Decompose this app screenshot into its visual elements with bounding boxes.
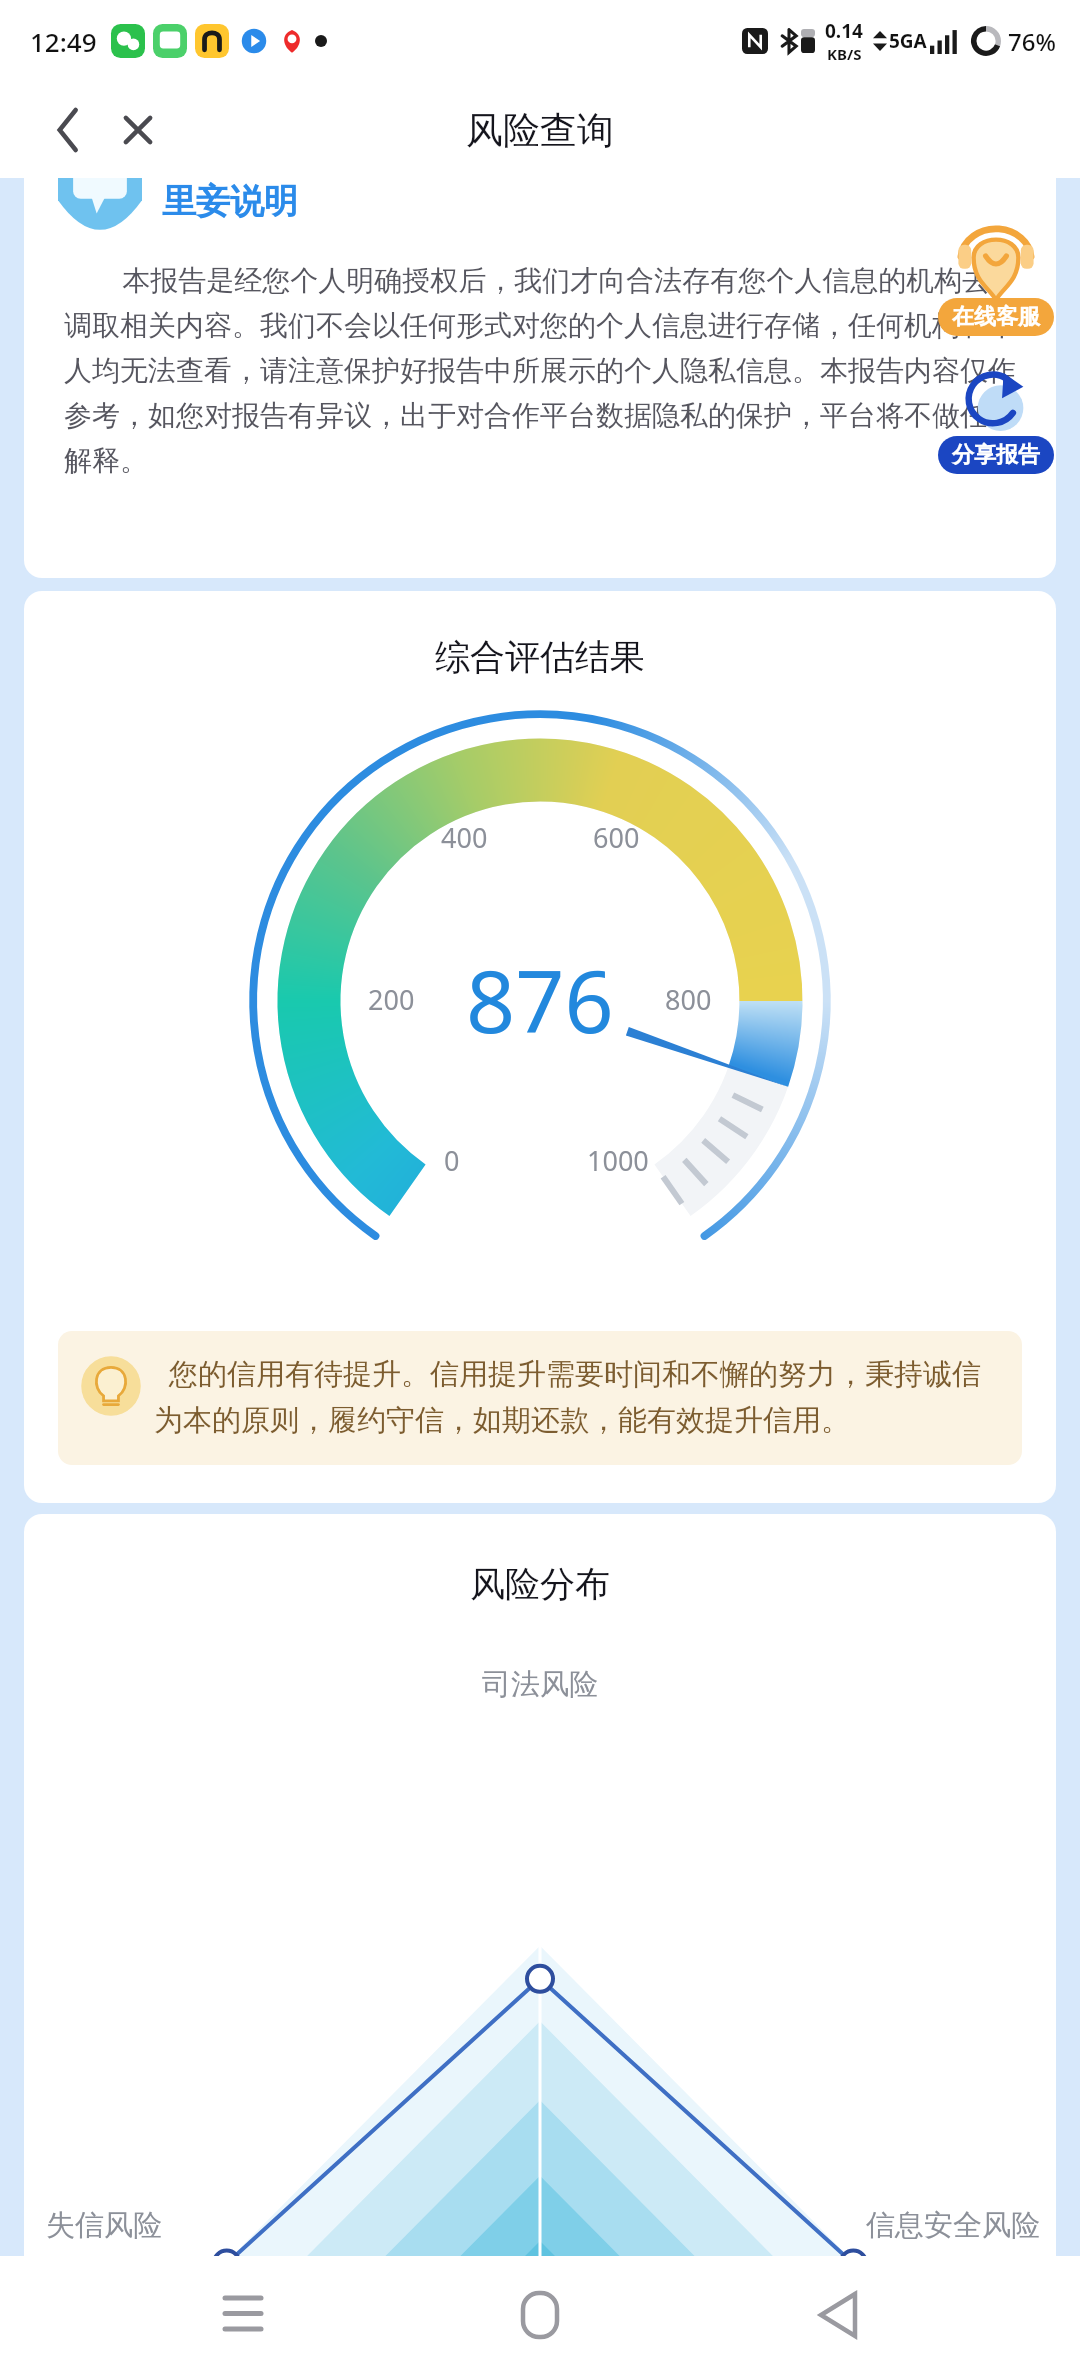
staticText: 风险分布 [470,1562,610,1606]
staticText: 200 [368,981,415,1018]
staticText: 600 [593,819,640,856]
staticText: 0 [444,1142,460,1179]
staticText: 分享报告 [952,441,1040,469]
staticText: 本报告是经您个人明确授权后，我们才向合法存有您个人信息的机构去调取相关内容。我们… [64,260,1018,478]
staticText: 里妾说明 [162,180,298,223]
staticText: 12:49 [30,24,97,59]
staticText: 综合评估结果 [435,635,645,679]
button[interactable]: 分享报告 Share report [938,364,1054,478]
staticText: 800 [665,981,712,1018]
staticText: 76% [1008,25,1056,58]
staticText: 您的信用有待提升。信用提升需要时间和不懈的努力，秉持诚信为本的原则，履约守信，如… [154,1353,996,1439]
staticText: 1000 [587,1142,649,1179]
staticText: 400 [441,819,488,856]
staticText: 信息安全风险 [866,2207,1040,2244]
button[interactable]: Back [783,2260,893,2370]
button[interactable]: Home [485,2260,595,2370]
staticText: 失信风险 [46,2207,162,2244]
staticText: 在线客服 [952,303,1040,331]
button[interactable]: Recents [188,2260,298,2370]
button[interactable]: Back [40,102,96,158]
staticText: 5GA [889,28,927,54]
staticText: KB/S [827,44,862,64]
staticText: 0.14 [825,18,863,44]
button[interactable]: Close [110,102,166,158]
staticText: 司法风险 [482,1666,598,1703]
staticText: 风险查询 [466,107,614,154]
staticText: 876 [466,941,614,1058]
button[interactable]: 在线客服 Online customer service [938,224,1054,342]
